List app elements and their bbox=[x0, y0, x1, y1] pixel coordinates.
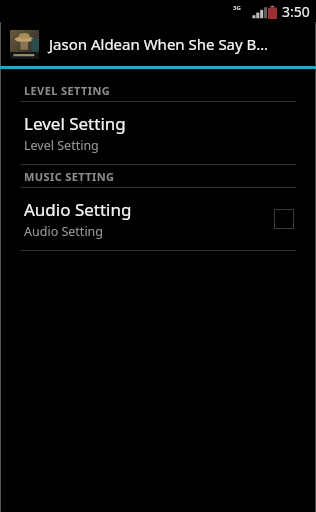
staticText: LEVEL SETTING bbox=[24, 83, 111, 98]
button[interactable]: Level Setting bbox=[0, 102, 316, 164]
button[interactable]: Audio Setting bbox=[0, 188, 316, 250]
staticText: Audio Setting bbox=[24, 223, 104, 240]
staticText: 3:50 bbox=[282, 2, 310, 21]
other: Toggle Audio Setting bbox=[274, 209, 294, 229]
staticText: Audio Setting bbox=[24, 198, 132, 221]
staticText: Level Setting bbox=[24, 137, 99, 154]
other: Album art bbox=[10, 30, 39, 59]
staticText: Jason Aldean When She Say B… bbox=[49, 34, 269, 54]
button[interactable]: Album art bbox=[0, 22, 316, 66]
staticText: MUSIC SETTING bbox=[24, 169, 115, 184]
staticText: Level Setting bbox=[24, 112, 126, 135]
staticText: 3G bbox=[233, 4, 241, 12]
